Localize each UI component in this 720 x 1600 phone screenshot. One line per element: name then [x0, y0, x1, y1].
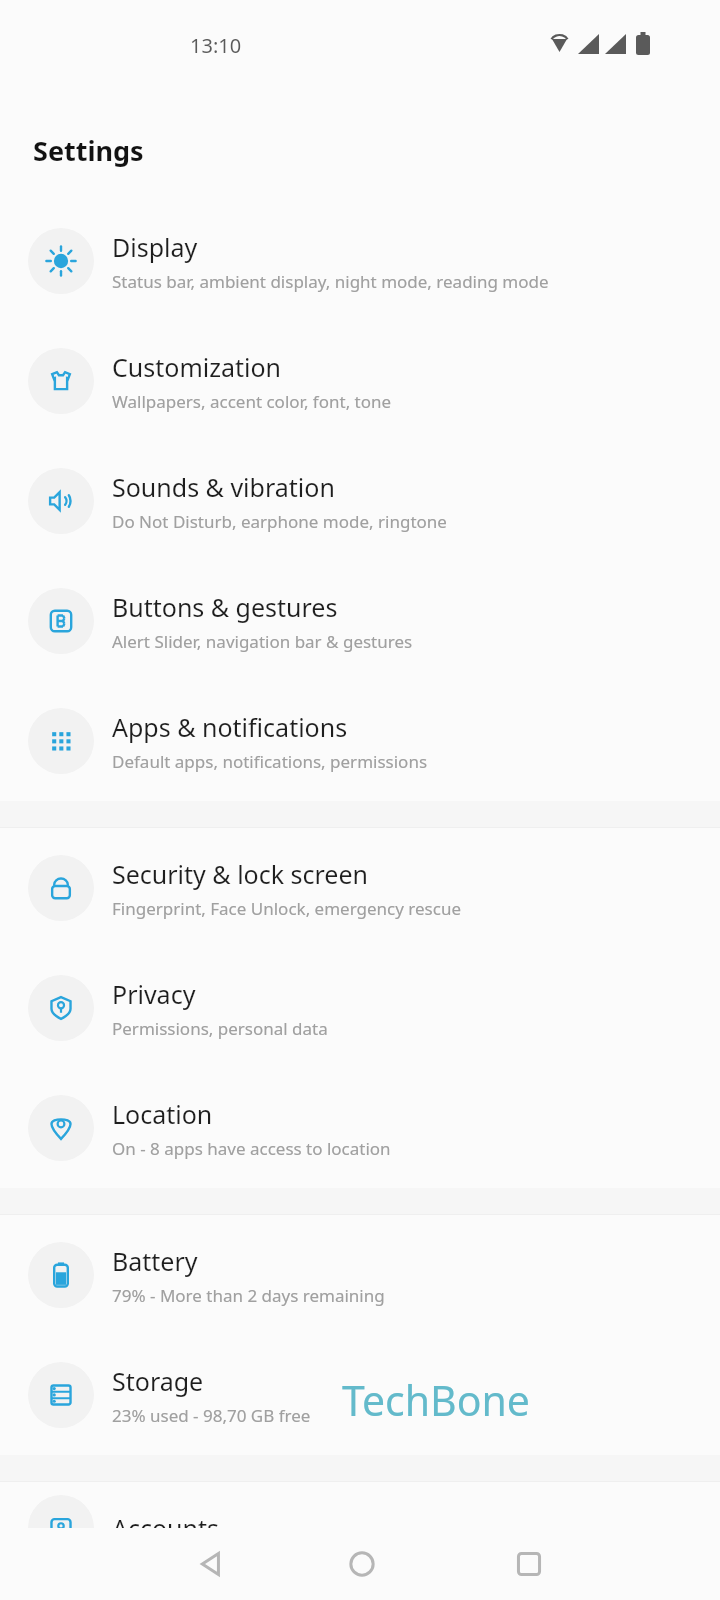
staticText: Settings — [33, 132, 144, 169]
staticText: Alert Slider, navigation bar & gestures — [112, 630, 413, 653]
staticText: Location — [112, 1097, 213, 1131]
staticText: Privacy — [112, 977, 196, 1011]
button[interactable]: Accounts — [0, 1482, 720, 1574]
staticText: TechBone — [342, 1372, 530, 1428]
staticText: Status bar, ambient display, night mode,… — [112, 270, 549, 293]
staticText: Storage — [112, 1364, 204, 1398]
button[interactable]: Location — [0, 1068, 720, 1188]
staticText: Display — [112, 230, 198, 264]
button[interactable]: Sounds & vibration — [0, 441, 720, 561]
staticText: 79% - More than 2 days remaining — [112, 1284, 385, 1307]
staticText: Sounds & vibration — [112, 470, 335, 504]
staticText: Apps & notifications — [112, 710, 348, 744]
staticText: Wallpapers, accent color, font, tone — [112, 390, 392, 413]
staticText: Security & lock screen — [112, 857, 369, 891]
staticText: Fingerprint, Face Unlock, emergency resc… — [112, 897, 461, 920]
button[interactable]: Apps & notifications — [0, 681, 720, 801]
staticText: Permissions, personal data — [112, 1017, 328, 1040]
staticText: Battery — [112, 1244, 198, 1278]
button[interactable]: Buttons & gestures — [0, 561, 720, 681]
button[interactable]: Privacy — [0, 948, 720, 1068]
staticText: Do Not Disturb, earphone mode, ringtone — [112, 510, 447, 533]
button[interactable]: Battery — [0, 1215, 720, 1335]
staticText: 13:10 — [190, 32, 242, 59]
staticText: Buttons & gestures — [112, 590, 338, 624]
button[interactable]: Customization — [0, 321, 720, 441]
button[interactable]: Back — [180, 1533, 242, 1595]
button[interactable]: Storage — [0, 1335, 720, 1455]
staticText: Accounts — [112, 1511, 220, 1545]
button[interactable]: Home — [331, 1533, 393, 1595]
button[interactable]: Recent apps — [498, 1533, 560, 1595]
button[interactable]: Display — [0, 201, 720, 321]
staticText: 23% used - 98,70 GB free — [112, 1404, 311, 1427]
staticText: On - 8 apps have access to location — [112, 1137, 391, 1160]
staticText: Default apps, notifications, permissions — [112, 750, 428, 773]
staticText: Customization — [112, 350, 282, 384]
button[interactable]: Security & lock screen — [0, 828, 720, 948]
